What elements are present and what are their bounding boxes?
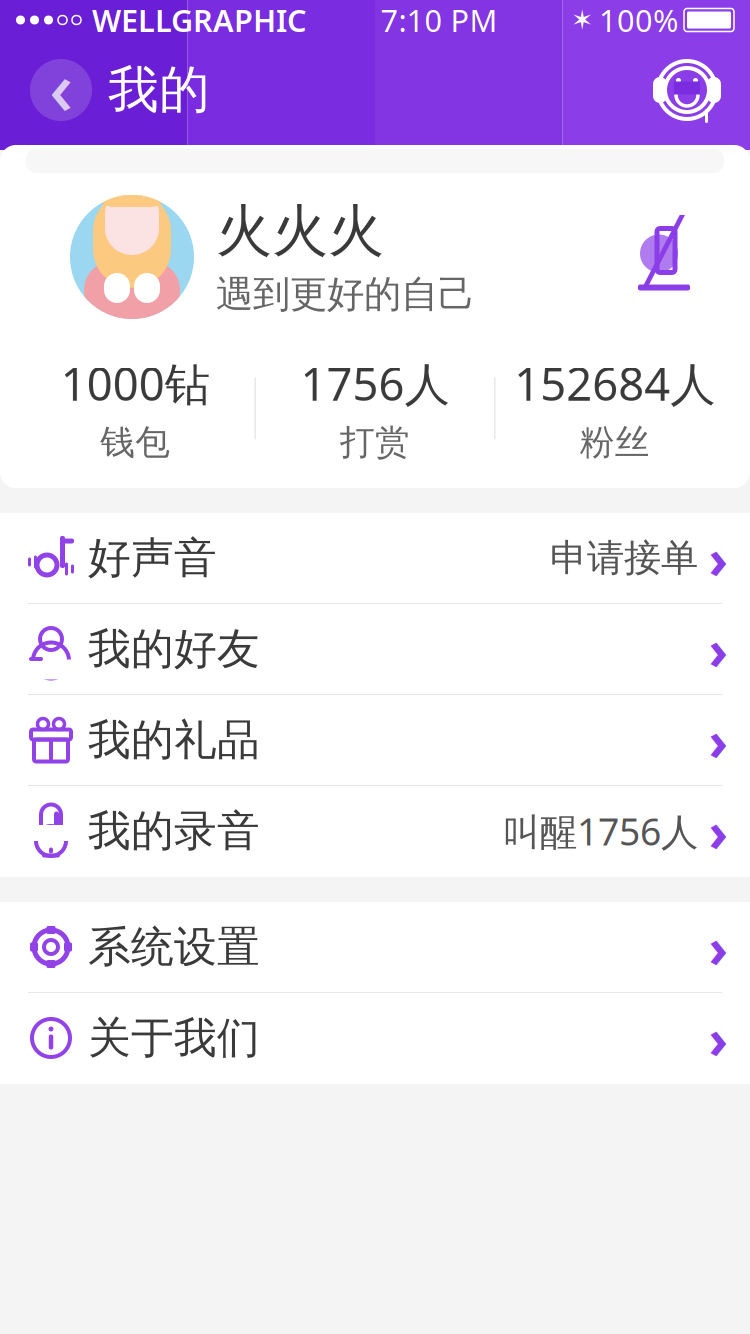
staticText: 打赏 — [340, 421, 410, 464]
staticText: › — [708, 796, 727, 866]
staticText: 叫醒1756人 — [503, 806, 698, 856]
staticText: › — [708, 1003, 727, 1073]
button[interactable]: 1756人 — [256, 353, 494, 464]
button[interactable]: 好声音 — [0, 513, 750, 604]
staticText: 7:10 PM — [380, 0, 497, 40]
staticText: 1756人 — [300, 353, 449, 413]
staticText: 钱包 — [100, 421, 170, 464]
staticText: ‹ — [49, 36, 73, 136]
staticText: 1000钻 — [61, 353, 210, 413]
staticText: › — [708, 912, 727, 982]
staticText: ╱ — [645, 216, 682, 285]
button[interactable]: 我的礼品 — [0, 695, 750, 786]
staticText: 申请接单 — [550, 535, 698, 581]
staticText: 我的礼品 — [88, 714, 260, 766]
staticText: › — [708, 614, 727, 684]
staticText: 我的录音 — [88, 805, 260, 857]
staticText: 100% — [599, 0, 678, 40]
staticText: › — [708, 705, 727, 775]
staticText: 遇到更好的自己 — [216, 271, 475, 317]
staticText: 好声音 — [88, 532, 217, 584]
staticText: 我的好友 — [88, 623, 260, 675]
staticText: 152684人 — [514, 353, 715, 413]
staticText: 系统设置 — [88, 921, 260, 973]
staticText: 粉丝 — [580, 421, 650, 464]
button[interactable]: 我的录音 — [0, 786, 750, 877]
button[interactable]: Edit profile — [634, 222, 694, 292]
button[interactable]: 1000钻 — [16, 353, 255, 464]
button[interactable]: 我的好友 — [0, 604, 750, 695]
staticText: 关于我们 — [88, 1012, 260, 1064]
staticText: WELLGRAPHIC — [92, 0, 307, 40]
staticText: › — [708, 523, 727, 593]
button[interactable]: 关于我们 — [0, 993, 750, 1084]
staticText: 火火火 — [216, 197, 384, 265]
button[interactable]: 系统设置 — [0, 902, 750, 993]
staticText: 我的 — [108, 59, 210, 121]
staticText: ✶ — [571, 5, 593, 35]
button[interactable]: Customer support — [652, 55, 722, 125]
button[interactable]: 152684人 — [495, 353, 734, 464]
button[interactable]: Back — [22, 51, 100, 129]
